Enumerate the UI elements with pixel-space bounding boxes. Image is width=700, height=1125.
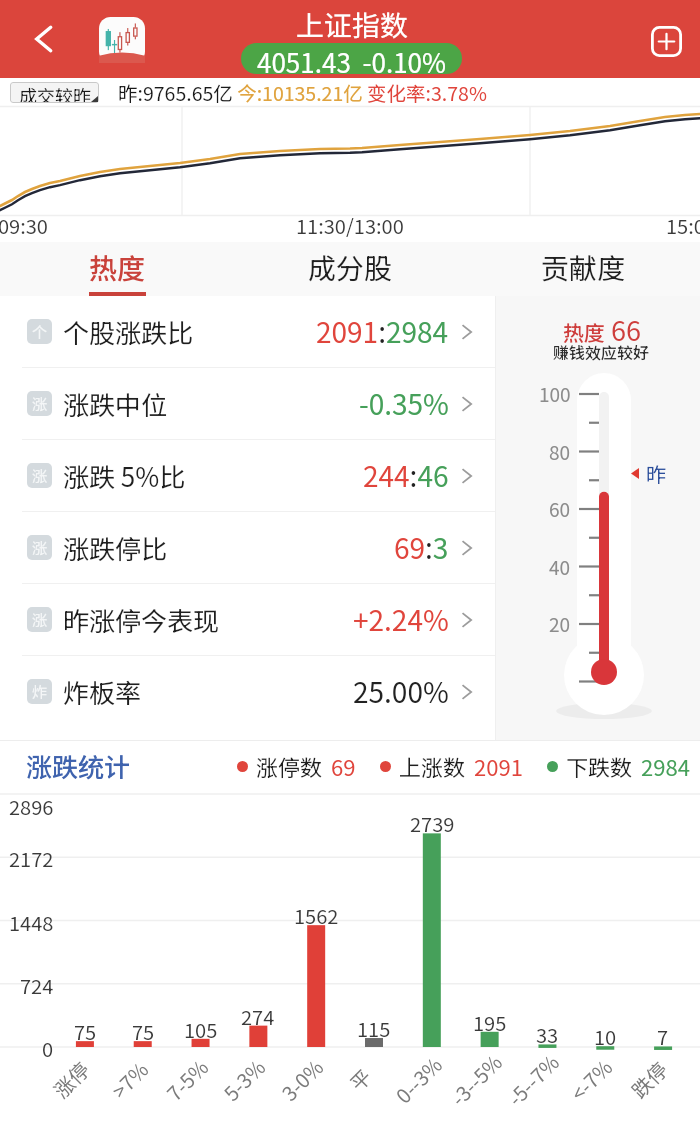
- staticText: 2896: [9, 792, 54, 821]
- staticText: 成分股: [308, 247, 393, 288]
- staticText: 涨跌中位: [63, 385, 168, 423]
- staticText: 热度: [563, 317, 605, 347]
- button[interactable]: 贡献度: [467, 242, 700, 296]
- staticText: 涨: [32, 537, 48, 559]
- staticText: 195: [473, 1008, 507, 1037]
- staticText: 10: [594, 1022, 617, 1051]
- staticText: -0.35%: [359, 383, 449, 424]
- staticText: 涨停数: [256, 750, 323, 782]
- staticText: 80: [549, 438, 571, 466]
- button[interactable]: 涨停数: [237, 750, 356, 782]
- staticText: 69: [331, 750, 356, 782]
- staticText: 跌停: [625, 1055, 673, 1104]
- staticText: 66: [611, 310, 641, 349]
- staticText: -3--5%: [444, 1047, 508, 1112]
- button[interactable]: Add: [645, 20, 687, 62]
- button[interactable]: 涨: [0, 512, 495, 583]
- staticText: 20: [549, 610, 571, 638]
- staticText: 贡献度: [541, 247, 626, 288]
- staticText: 244:46: [363, 455, 449, 496]
- staticText: -5--7%: [501, 1047, 565, 1112]
- staticText: 724: [20, 971, 54, 1000]
- staticText: 2739: [410, 809, 455, 838]
- button[interactable]: 成交较昨: [10, 82, 99, 103]
- staticText: 上涨数: [399, 750, 466, 782]
- staticText: 热度: [89, 247, 146, 288]
- button[interactable]: App: [99, 17, 145, 63]
- staticText: 涨: [32, 609, 48, 631]
- button[interactable]: 热度: [0, 242, 234, 296]
- staticText: 1562: [294, 901, 339, 930]
- button[interactable]: 炸: [0, 656, 495, 727]
- staticText: 昨涨停今表现: [63, 601, 220, 639]
- staticText: >7%: [105, 1055, 154, 1104]
- staticText: 平: [343, 1062, 377, 1097]
- staticText: 上证指数: [296, 4, 409, 45]
- staticText: 7: [657, 1022, 669, 1051]
- staticText: 涨跌统计: [26, 747, 131, 785]
- staticText: 274: [241, 1002, 275, 1031]
- staticText: 115: [357, 1014, 391, 1043]
- staticText: 3-0%: [275, 1052, 329, 1107]
- staticText: 2091:2984: [316, 311, 449, 352]
- staticText: 40: [549, 553, 571, 581]
- staticText: 100: [539, 380, 571, 408]
- staticText: 炸: [32, 681, 48, 703]
- staticText: 09:30: [0, 211, 48, 240]
- staticText: 昨: [646, 459, 666, 488]
- staticText: 0: [42, 1034, 54, 1063]
- staticText: 成交较昨: [19, 82, 91, 103]
- staticText: 赚钱效应较好: [553, 340, 650, 363]
- staticText: 炸板率: [63, 673, 142, 711]
- staticText: 下跌数: [566, 750, 633, 782]
- staticText: 个股涨跌比: [63, 313, 194, 351]
- staticText: 15:00: [666, 211, 700, 240]
- button[interactable]: 4051.43 -0.10%: [241, 43, 462, 74]
- button[interactable]: Back: [20, 15, 68, 63]
- button[interactable]: 下跌数: [547, 750, 690, 782]
- staticText: 7-5%: [160, 1052, 214, 1107]
- staticText: 75: [74, 1017, 97, 1046]
- staticText: 69:3: [394, 527, 449, 568]
- staticText: 个: [32, 321, 48, 343]
- button[interactable]: 涨: [0, 440, 495, 511]
- staticText: 0--3%: [389, 1050, 448, 1109]
- staticText: 60: [549, 495, 571, 523]
- staticText: 33: [536, 1020, 559, 1049]
- staticText: 25.00%: [353, 671, 449, 712]
- staticText: 涨: [32, 393, 48, 415]
- button[interactable]: 成分股: [234, 242, 467, 296]
- staticText: 昨:9765.65亿 今:10135.21亿 变化率:3.78%: [118, 78, 487, 106]
- staticText: 105: [184, 1015, 218, 1044]
- staticText: <-7%: [564, 1052, 618, 1107]
- staticText: 4051.43 -0.10%: [257, 43, 446, 74]
- staticText: 2984: [641, 750, 690, 782]
- staticText: 2091: [474, 750, 523, 782]
- staticText: +2.24%: [353, 599, 449, 640]
- staticText: 涨停: [47, 1055, 95, 1104]
- staticText: 涨跌 5%比: [63, 457, 186, 495]
- button[interactable]: 上涨数: [380, 750, 523, 782]
- button[interactable]: 个: [0, 296, 495, 367]
- staticText: 1448: [9, 908, 54, 937]
- staticText: 5-3%: [217, 1052, 271, 1107]
- staticText: 涨: [32, 465, 48, 487]
- button[interactable]: 涨: [0, 368, 495, 439]
- staticText: 涨跌停比: [63, 529, 168, 567]
- button[interactable]: 涨: [0, 584, 495, 655]
- staticText: 11:30/13:00: [296, 211, 404, 240]
- staticText: 2172: [9, 844, 54, 873]
- staticText: 75: [132, 1017, 155, 1046]
